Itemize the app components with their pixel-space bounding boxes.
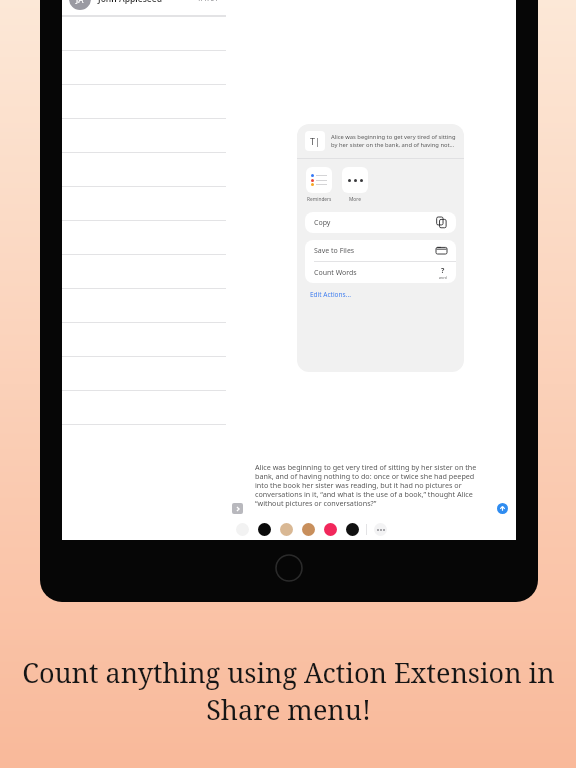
staticText: Save to Files: [314, 246, 355, 256]
staticText: 1/1/01: [197, 0, 219, 4]
staticText: word: [439, 276, 447, 280]
staticText: Count Words: [314, 268, 357, 278]
button[interactable]: JA: [62, 0, 226, 16]
button[interactable]: Apple Pay: [258, 523, 271, 536]
staticText: Count anything using Action Extension in: [22, 654, 555, 691]
button[interactable]: Save to Files: [305, 240, 456, 261]
button[interactable]: Reminders: [306, 167, 332, 203]
button[interactable]: Apps: [232, 503, 243, 514]
button[interactable]: More: [342, 167, 368, 203]
staticText: ?: [441, 266, 445, 276]
button[interactable]: Edit Actions...: [310, 290, 464, 299]
staticText: Share menu!: [206, 691, 371, 728]
button[interactable]: Alice was beginning to get very tired of…: [255, 462, 486, 509]
staticText: John Appleseed: [98, 0, 197, 5]
button[interactable]: Memoji 2: [302, 523, 315, 536]
staticText: T|: [310, 135, 320, 147]
button[interactable]: Memoji: [280, 523, 293, 536]
staticText: Reminders: [307, 196, 332, 203]
staticText: Alice was beginning to get very tired of…: [255, 462, 486, 509]
button[interactable]: Photos: [236, 523, 249, 536]
button[interactable]: Send: [497, 503, 508, 514]
button[interactable]: More apps: [374, 523, 387, 536]
button[interactable]: Music: [346, 523, 359, 536]
button[interactable]: Images: [324, 523, 337, 536]
button[interactable]: Home: [275, 554, 303, 582]
button[interactable]: Count Words: [305, 262, 456, 283]
staticText: JA: [76, 0, 84, 5]
button[interactable]: Copy: [305, 212, 456, 233]
staticText: Alice was beginning to get very tired of…: [331, 133, 456, 149]
staticText: More: [349, 196, 361, 203]
staticText: Copy: [314, 218, 331, 228]
staticText: Edit Actions...: [310, 290, 351, 299]
